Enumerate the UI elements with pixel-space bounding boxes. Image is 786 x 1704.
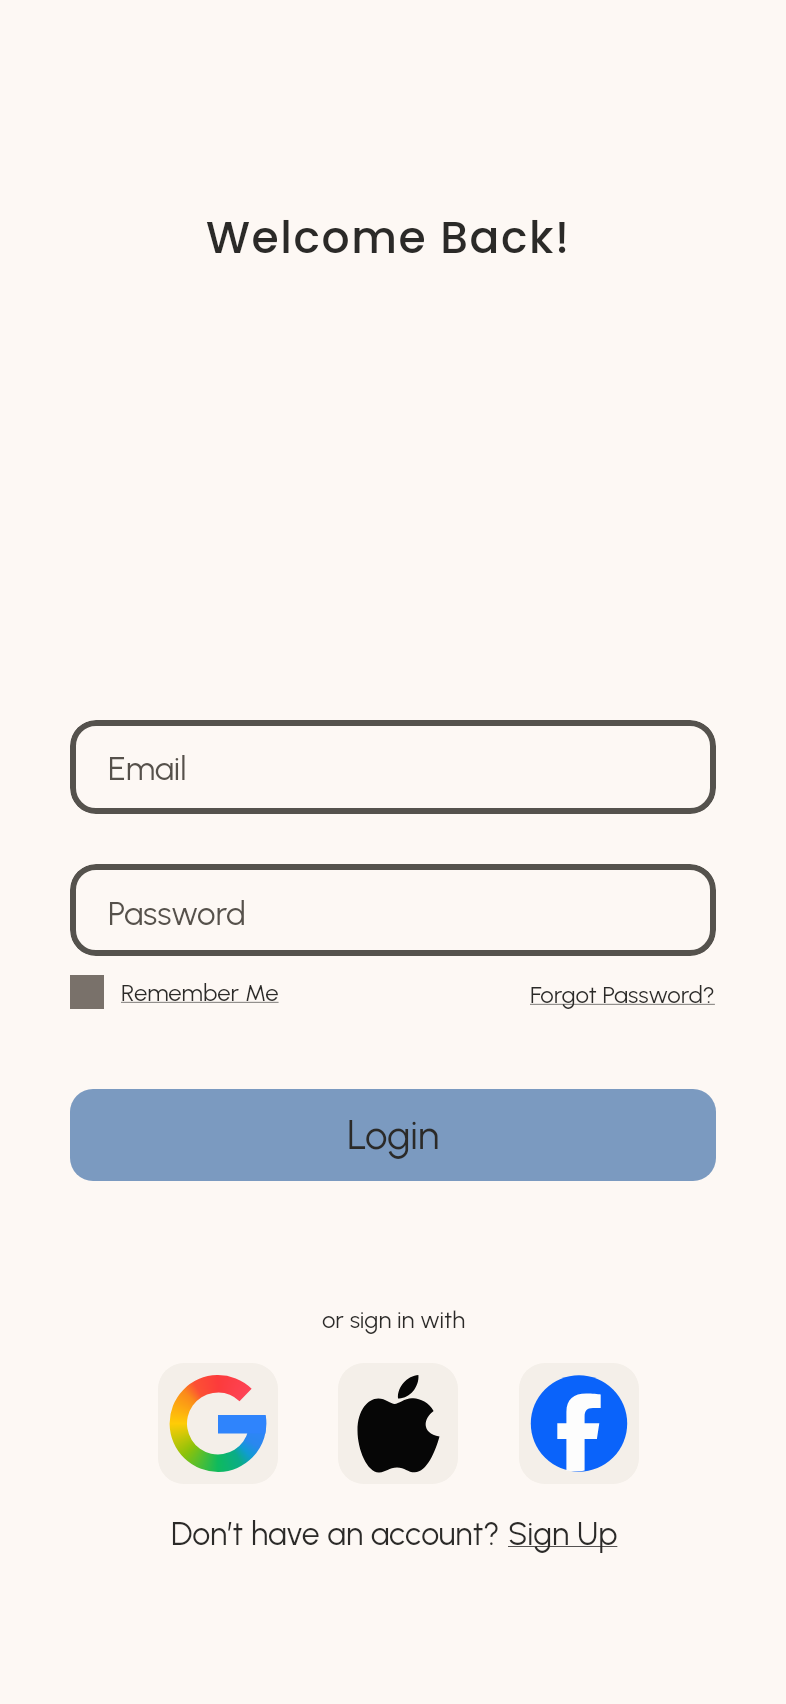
staticText: Password <box>108 894 246 934</box>
button[interactable]: Sign Up <box>508 1515 618 1553</box>
staticText: Email <box>108 749 187 789</box>
staticText: Welcome Back! <box>206 207 571 269</box>
staticText: Login <box>347 1111 440 1159</box>
staticText: or sign in with <box>322 1305 466 1334</box>
staticText: Remember Me <box>121 978 279 1007</box>
button[interactable]: Remember Me <box>70 975 279 1009</box>
button[interactable]: Sign in with Facebook <box>519 1363 639 1484</box>
staticText: Don’t have an account? <box>171 1515 508 1553</box>
button[interactable]: Login <box>70 1089 716 1181</box>
button[interactable]: Email <box>70 720 716 814</box>
button[interactable]: Password <box>70 864 716 956</box>
button[interactable]: Sign in with Google <box>158 1363 278 1484</box>
button[interactable]: Forgot Password? <box>530 980 715 1009</box>
button[interactable]: Sign in with Apple <box>338 1363 458 1484</box>
